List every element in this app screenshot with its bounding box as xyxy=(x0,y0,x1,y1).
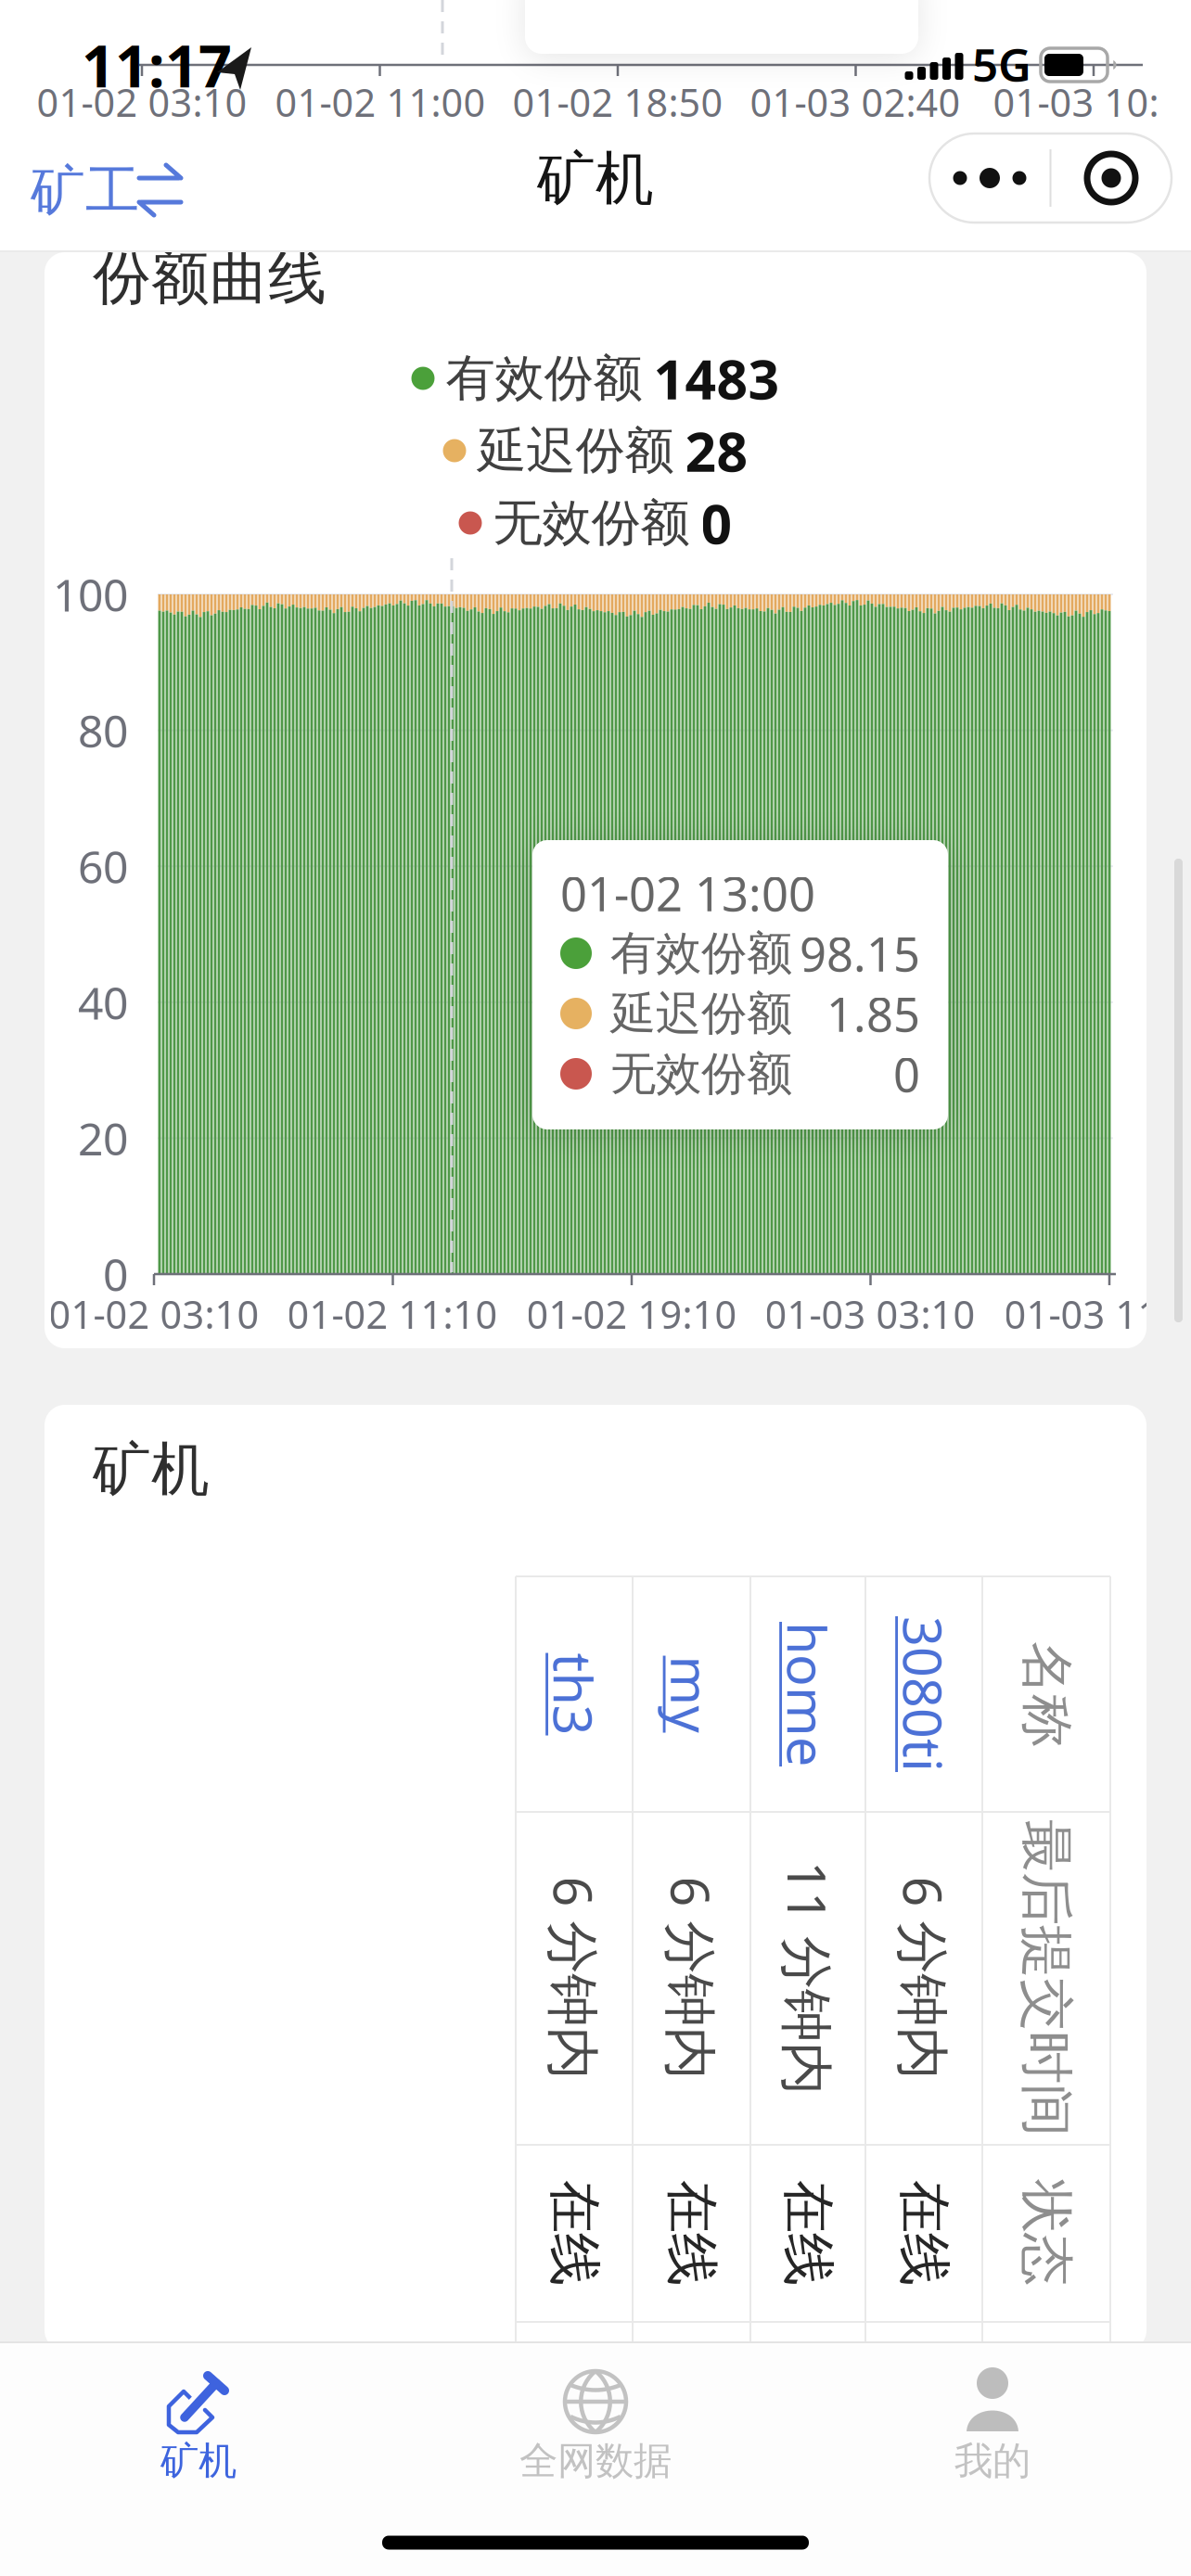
staticText: 6 分钟内 xyxy=(590,1943,793,2013)
staticText: 0 xyxy=(893,1043,920,1105)
staticText: 01-03 03:10 xyxy=(765,1289,975,1339)
button[interactable]: 矿工 xyxy=(0,0,1191,2576)
staticText: 在线 xyxy=(755,2200,861,2266)
staticText: 3080ti xyxy=(846,1659,1002,1729)
staticText: 5G xyxy=(972,34,1031,94)
button[interactable]: my xyxy=(45,1405,1146,2351)
staticText: 名称 xyxy=(993,1662,1099,1727)
button[interactable]: th3 xyxy=(45,1405,1146,2351)
button[interactable]: 矿机 xyxy=(22,2348,375,2515)
staticText: 100 xyxy=(53,565,128,624)
button[interactable]: 我的 xyxy=(816,2348,1169,2515)
staticText: 40 xyxy=(78,973,128,1032)
button[interactable]: 3080ti xyxy=(45,1405,1146,2351)
staticText: 01-02 11:00 xyxy=(275,77,486,128)
staticText: 在线 xyxy=(871,2200,977,2266)
staticText: 01-02 13:00 xyxy=(560,862,815,924)
staticText: 矿机 xyxy=(93,1434,210,1505)
staticText: 01-02 03:10 xyxy=(37,77,247,128)
button[interactable]: home xyxy=(45,1405,1146,2351)
staticText: 无效份额 xyxy=(493,493,690,553)
staticText: 01-03 10: xyxy=(993,77,1159,128)
staticText: th3 xyxy=(533,1659,615,1729)
staticText: 无效份额 xyxy=(610,1046,792,1102)
staticText: 矿机 xyxy=(160,2437,237,2485)
staticText: 80 xyxy=(78,701,128,760)
staticText: 延迟份额 xyxy=(477,420,674,481)
staticText: 01-03 02:40 xyxy=(750,77,960,128)
staticText: 延迟份额 xyxy=(610,985,792,1042)
staticText: 在线 xyxy=(639,2200,744,2266)
staticText: 28 xyxy=(685,414,748,487)
staticText: 1.85 xyxy=(826,982,920,1045)
staticText: 状态 xyxy=(993,2200,1099,2266)
staticText: 60 xyxy=(78,837,128,896)
staticText: 20 xyxy=(78,1109,128,1168)
staticText: home xyxy=(736,1659,880,1729)
staticText: 份额曲线 xyxy=(93,242,327,314)
staticText: 11 分钟内 xyxy=(691,1943,925,2013)
staticText: my xyxy=(653,1659,730,1729)
button[interactable]: More xyxy=(929,134,1050,223)
staticText: 有效份额 xyxy=(446,348,642,409)
button[interactable]: Exit mini program xyxy=(1051,134,1172,223)
staticText: 01-02 18:50 xyxy=(512,77,723,128)
staticText: 0 xyxy=(701,487,732,559)
button[interactable]: 全网数据 xyxy=(419,2348,772,2515)
staticText: 6 分钟内 xyxy=(822,1943,1025,2013)
staticText: 1483 xyxy=(653,342,780,414)
staticText: 最后提交时间 xyxy=(888,1945,1191,2011)
staticText: 我的 xyxy=(954,2437,1031,2485)
staticText: 0 xyxy=(103,1245,128,1304)
staticText: 在线 xyxy=(521,2200,627,2266)
staticText: 01-02 03:10 xyxy=(49,1289,259,1339)
staticText: 98.15 xyxy=(800,922,920,984)
staticText: 6 分钟内 xyxy=(473,1943,676,2013)
staticText: 矿工 xyxy=(31,158,140,224)
staticText: 矿机 xyxy=(537,143,654,215)
staticText: 11:17 xyxy=(82,26,232,103)
staticText: 有效份额 xyxy=(610,925,792,981)
staticText: 01-03 11:10 xyxy=(1004,1289,1191,1339)
staticText: 01-02 11:10 xyxy=(287,1289,498,1339)
staticText: 全网数据 xyxy=(519,2437,672,2485)
staticText: 01-02 19:10 xyxy=(526,1289,737,1339)
